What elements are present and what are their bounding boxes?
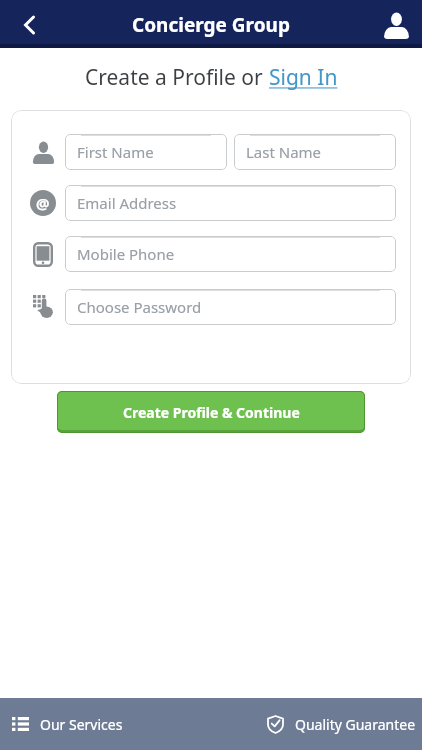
button[interactable]: Create Profile & Continue <box>57 391 365 433</box>
button[interactable] <box>379 8 413 42</box>
staticText: Mobile Phone <box>77 244 175 264</box>
staticText: Quality Guarantee <box>295 715 416 734</box>
staticText: @ <box>36 193 50 213</box>
button[interactable]: Our Services <box>12 698 123 750</box>
staticText: Email Address <box>77 193 177 213</box>
button[interactable]: Quality Guarantee <box>267 698 416 750</box>
staticText: Concierge Group <box>132 12 290 38</box>
button[interactable]: Sign In <box>269 63 338 92</box>
button[interactable]: Choose Password <box>77 289 396 325</box>
button[interactable]: Mobile Phone <box>77 236 396 272</box>
staticText: Create a Profile or <box>85 63 269 92</box>
staticText: Last Name <box>246 142 322 162</box>
staticText: First Name <box>77 142 154 162</box>
button[interactable]: Last Name <box>246 134 396 170</box>
button[interactable]: First Name <box>77 134 227 170</box>
button[interactable]: Email Address <box>77 185 396 221</box>
staticText: Create Profile & Continue <box>123 403 300 422</box>
staticText: Our Services <box>40 715 123 734</box>
button[interactable] <box>15 10 45 40</box>
staticText: Choose Password <box>77 297 202 317</box>
